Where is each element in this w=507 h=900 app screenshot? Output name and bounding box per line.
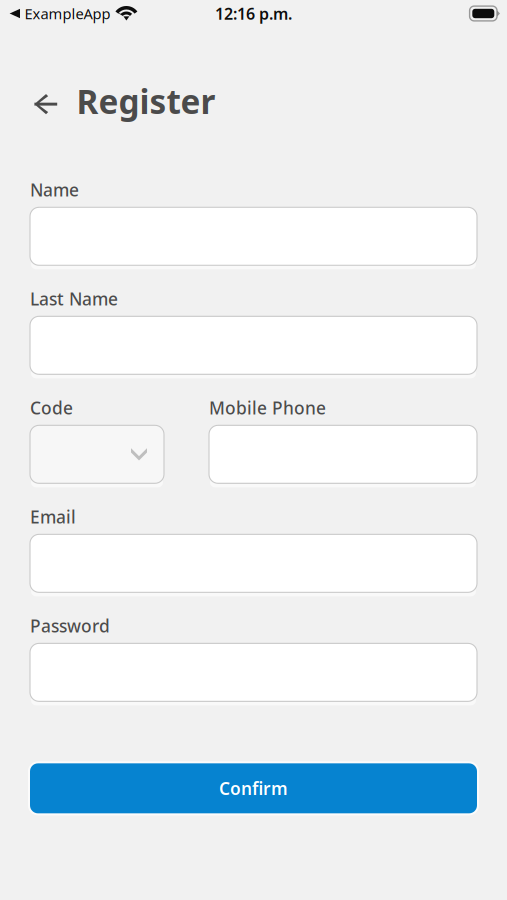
button[interactable]: Mobile Phone xyxy=(209,425,477,483)
button[interactable]: Confirm xyxy=(30,763,477,813)
button[interactable]: Password xyxy=(30,643,477,701)
button[interactable]: Name xyxy=(30,207,477,265)
button[interactable]: Back xyxy=(28,80,63,122)
staticText: Confirm xyxy=(219,777,288,800)
button[interactable]: Last Name xyxy=(30,316,477,374)
staticText: 12:16 p.m. xyxy=(215,3,292,24)
staticText: Last Name xyxy=(30,287,118,310)
button[interactable]: Code xyxy=(30,425,164,483)
staticText: ExampleApp xyxy=(24,4,110,23)
staticText: Name xyxy=(30,178,79,201)
staticText: Password xyxy=(30,614,110,637)
staticText: Code xyxy=(30,396,73,419)
staticText: Email xyxy=(30,505,76,528)
staticText: Mobile Phone xyxy=(209,396,326,419)
button[interactable]: Email xyxy=(30,534,477,592)
staticText: Register xyxy=(76,79,215,123)
